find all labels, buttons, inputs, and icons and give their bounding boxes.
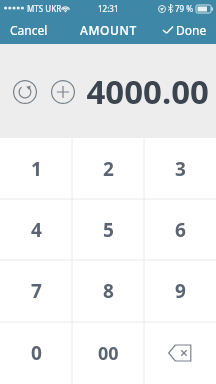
- staticText: 3: [175, 156, 186, 182]
- button[interactable]: 9: [144, 260, 216, 322]
- staticText: 6: [175, 217, 186, 243]
- button[interactable]: Reset amount: [11, 78, 38, 105]
- button[interactable]: Add amount: [49, 78, 76, 105]
- staticText: 00: [98, 341, 119, 366]
- staticText: 0: [31, 340, 42, 366]
- button[interactable]: Backspace: [144, 322, 216, 384]
- button[interactable]: 7: [0, 260, 72, 322]
- button[interactable]: 0: [0, 322, 72, 384]
- staticText: 4000.00: [86, 69, 209, 114]
- staticText: MTS UKR: [27, 3, 62, 14]
- staticText: 79 %: [175, 3, 194, 14]
- button[interactable]: Cancel: [0, 16, 58, 44]
- button[interactable]: 2: [72, 138, 144, 199]
- staticText: 4: [31, 217, 42, 243]
- staticText: Done: [176, 22, 207, 38]
- button[interactable]: 3: [144, 138, 216, 199]
- button[interactable]: 6: [144, 199, 216, 260]
- staticText: Cancel: [10, 22, 48, 38]
- button[interactable]: 4: [0, 199, 72, 260]
- button[interactable]: 00: [72, 322, 144, 384]
- staticText: 8: [103, 278, 114, 304]
- staticText: 9: [175, 278, 186, 304]
- button[interactable]: 8: [72, 260, 144, 322]
- staticText: 5: [103, 217, 114, 243]
- staticText: AMOUNT: [80, 22, 137, 38]
- button[interactable]: 1: [0, 138, 72, 199]
- staticText: 2: [103, 156, 114, 182]
- button[interactable]: 5: [72, 199, 144, 260]
- staticText: 12:31: [98, 3, 119, 14]
- staticText: 7: [31, 278, 42, 304]
- staticText: 1: [31, 156, 42, 182]
- button[interactable]: Done: [154, 16, 216, 44]
